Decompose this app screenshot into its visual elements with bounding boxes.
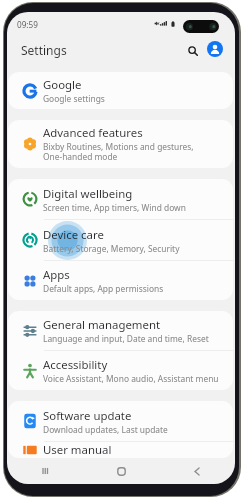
staticText: Software update xyxy=(43,408,132,424)
button[interactable]: Account xyxy=(207,41,223,57)
button[interactable]: Digital wellbeing xyxy=(8,179,233,219)
button[interactable]: Back xyxy=(159,458,235,484)
staticText: Accessibility xyxy=(43,357,108,373)
button[interactable]: Device care xyxy=(8,220,233,260)
button[interactable]: Accessibility xyxy=(8,351,233,390)
staticText: Apps xyxy=(43,267,70,283)
staticText: User manual xyxy=(43,442,112,458)
staticText: Google settings xyxy=(43,93,105,104)
button[interactable]: Advanced features xyxy=(8,120,233,168)
button[interactable]: Google xyxy=(8,72,233,109)
button[interactable]: Software update xyxy=(8,401,233,441)
staticText: Settings xyxy=(21,42,67,58)
staticText: Language and input, Date and time, Reset xyxy=(43,333,209,344)
button[interactable]: Recent apps xyxy=(7,458,83,484)
staticText: Download updates, Last update xyxy=(43,424,168,435)
button[interactable]: User manual xyxy=(8,442,233,458)
button[interactable]: Home xyxy=(83,458,159,484)
staticText: Battery, Storage, Memory, Security xyxy=(43,243,180,254)
staticText: 09:59 xyxy=(17,19,38,30)
button[interactable]: General management xyxy=(8,311,233,350)
button[interactable]: Apps xyxy=(8,261,233,300)
staticText: Bixby Routines, Motions and gestures, On… xyxy=(43,141,194,163)
staticText: Voice Assistant, Mono audio, Assistant m… xyxy=(43,373,219,384)
staticText: Digital wellbeing xyxy=(43,186,133,202)
staticText: Screen time, App timers, Wind down xyxy=(43,202,186,213)
staticText: Advanced features xyxy=(43,125,143,141)
staticText: General management xyxy=(43,317,161,333)
staticText: Device care xyxy=(43,227,104,243)
button[interactable]: Search xyxy=(182,40,203,61)
staticText: Google xyxy=(43,77,82,93)
staticText: Default apps, App permissions xyxy=(43,283,164,294)
